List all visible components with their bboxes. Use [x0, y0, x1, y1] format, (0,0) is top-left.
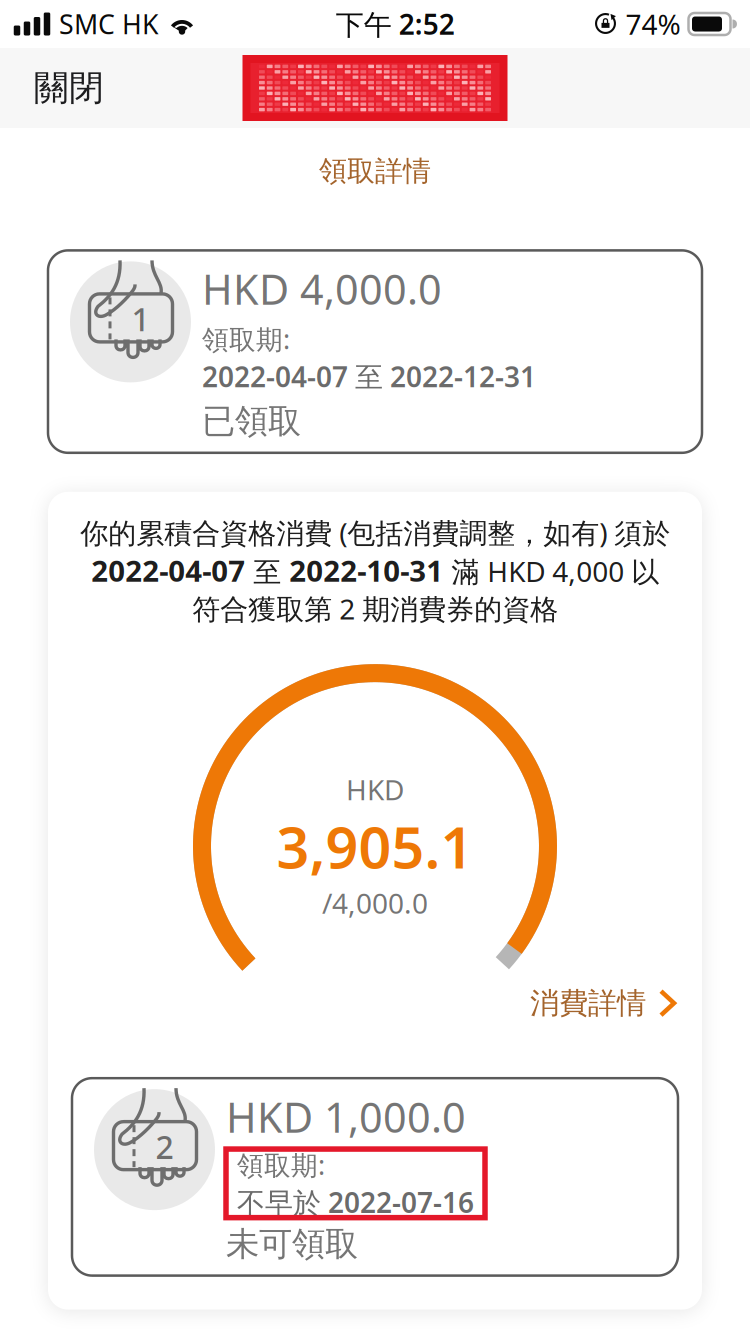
staticText: 74% [625, 5, 680, 43]
staticText: 2022-04-07 至 2022-12-31 [202, 358, 536, 395]
staticText: HKD 4,000.0 [202, 261, 442, 316]
staticText: 1 [131, 298, 149, 340]
button[interactable]: 1 [48, 250, 702, 453]
staticText: 領取期: [237, 1147, 325, 1182]
staticText: 領取詳情 [319, 154, 431, 188]
staticText: 領取期: [202, 321, 290, 357]
staticText: 下午 2:52 [336, 5, 455, 43]
staticText: HKD 1,000.0 [226, 1089, 466, 1144]
staticText: 已領取 [202, 401, 301, 442]
staticText: 不早於 2022-07-16 [237, 1183, 474, 1221]
staticText: 未可領取 [226, 1224, 358, 1264]
staticText: 2 [155, 1125, 173, 1168]
staticText: SMC HK [59, 6, 159, 42]
staticText: HKD [346, 771, 404, 808]
button[interactable]: 關閉 [16, 55, 122, 121]
staticText: /4,000.0 [322, 884, 428, 921]
staticText: 消費詳情 [530, 985, 646, 1021]
button[interactable]: 消費詳情 [530, 1028, 702, 1078]
staticText: 3,905.1 [276, 808, 473, 884]
staticText: 你的累積合資格消費 (包括消費調整，如有) 須於 2022-04-07 至 20… [80, 514, 670, 627]
button[interactable]: 2 [72, 1078, 678, 1276]
staticText: 關閉 [34, 67, 104, 109]
